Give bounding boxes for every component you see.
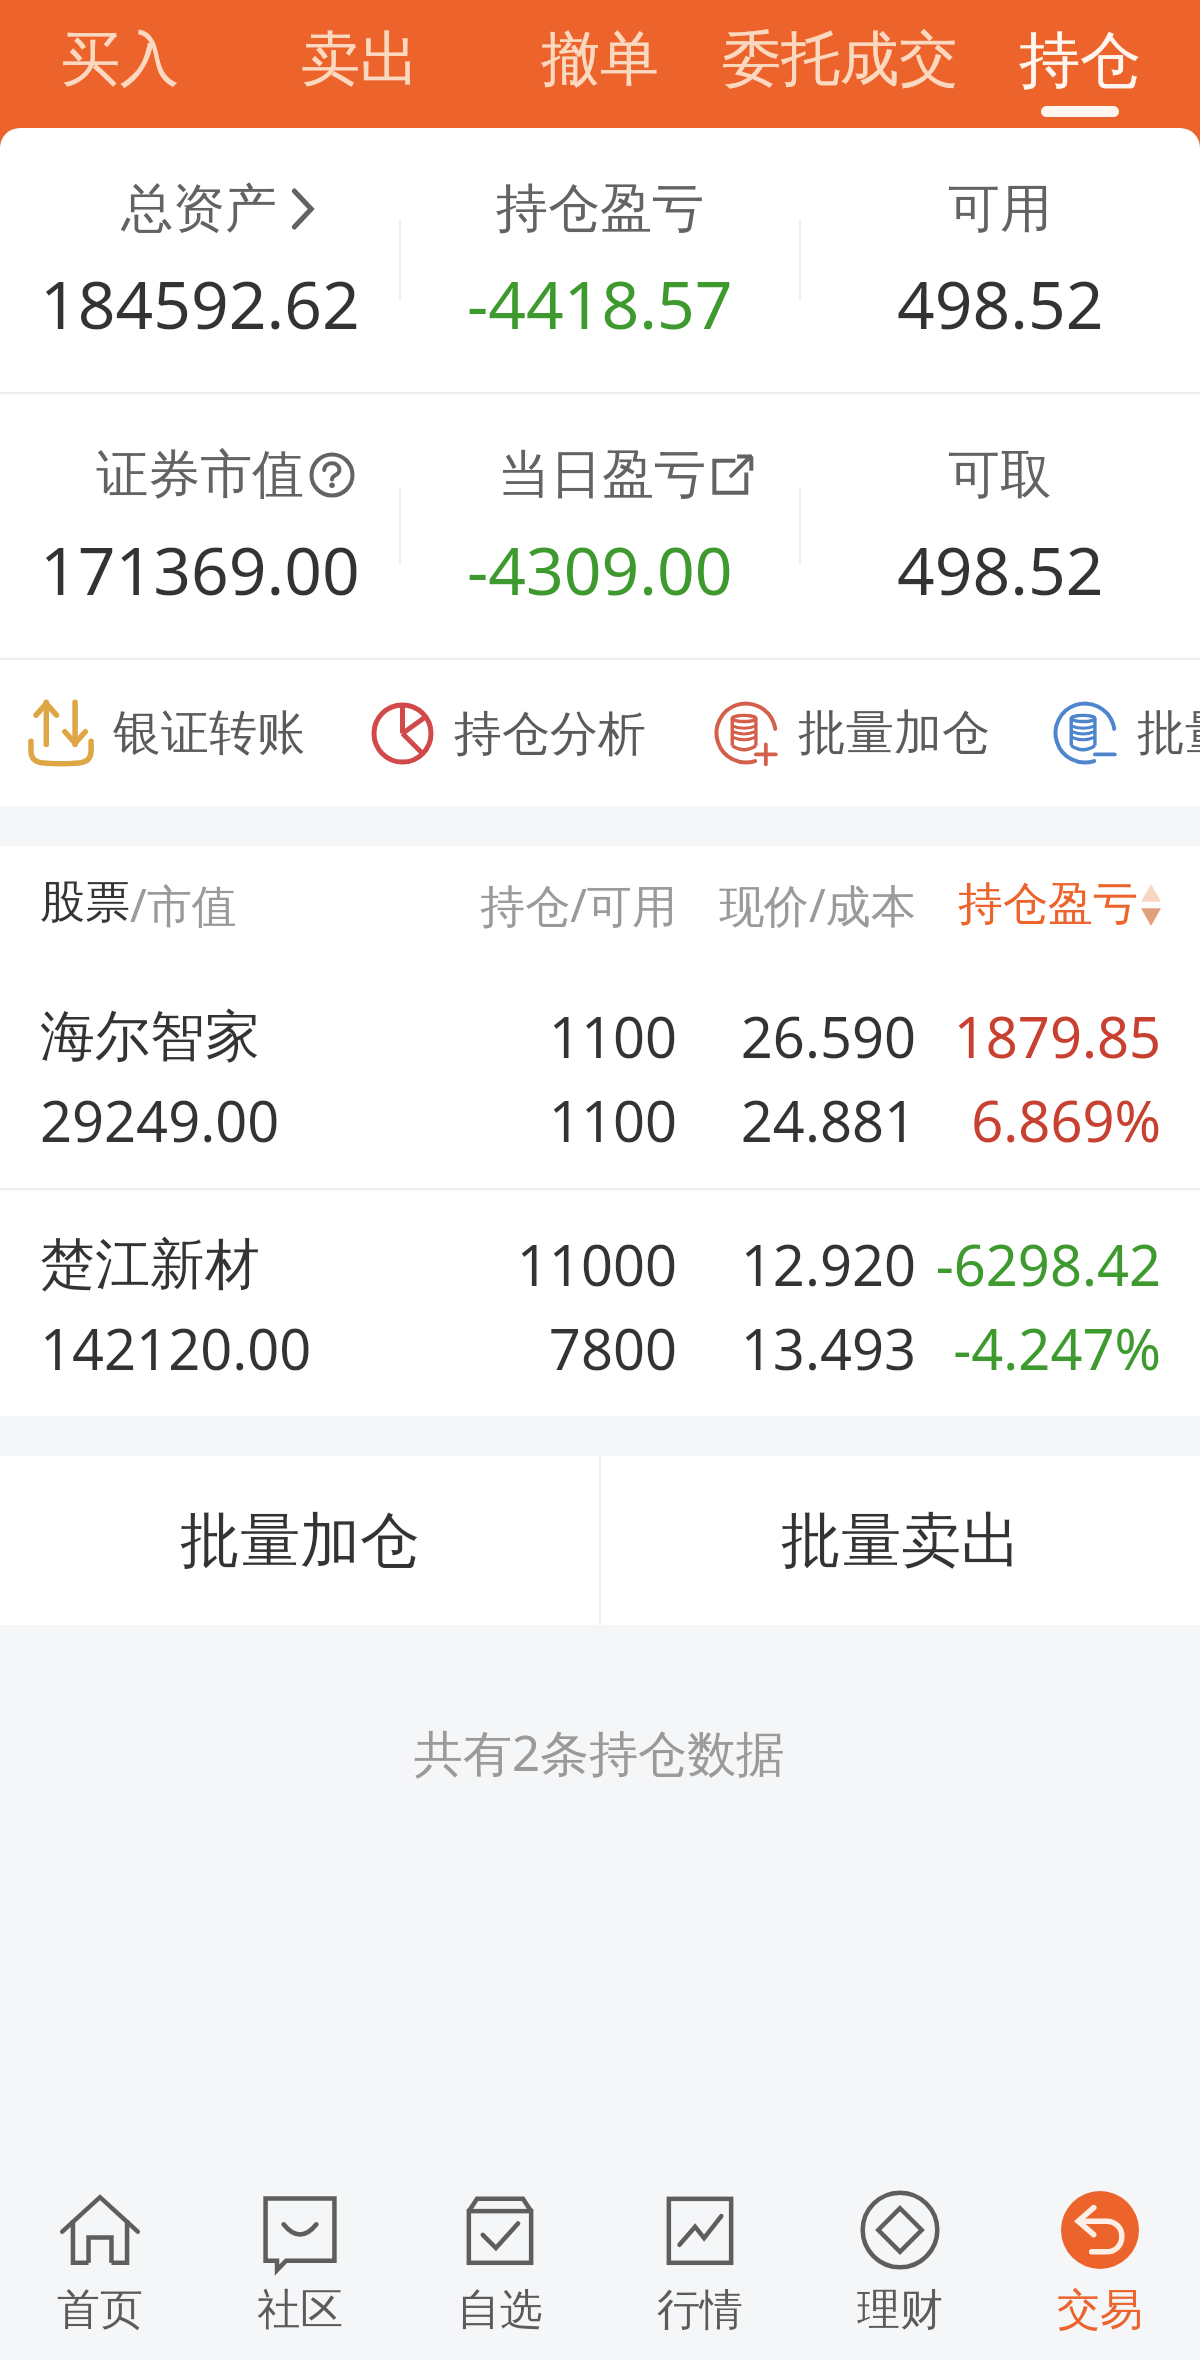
button[interactable]: 买入 xyxy=(0,0,240,128)
other: 首页 xyxy=(59,2189,141,2271)
staticText: 7800 xyxy=(477,1310,677,1386)
staticText: 当日盈亏 xyxy=(498,442,706,508)
staticText: 委托成交 xyxy=(722,22,958,96)
staticText: 184592.62 xyxy=(40,258,360,348)
button[interactable]: 批量加仓 xyxy=(0,1456,599,1625)
button[interactable]: 自选 xyxy=(400,2160,600,2360)
staticText: 1100 xyxy=(477,998,677,1074)
staticText: 社区 xyxy=(257,2283,343,2337)
button[interactable]: 海尔智家 xyxy=(0,962,1200,1188)
staticText: 持仓盈亏 xyxy=(958,876,1138,933)
button[interactable]: 楚江新材 xyxy=(0,1190,1200,1416)
staticText: 共有2条持仓数据 xyxy=(414,1719,786,1786)
staticText: 海尔智家 xyxy=(40,1002,477,1071)
staticText: 1879.85 xyxy=(916,998,1161,1074)
staticText: /市值 xyxy=(130,874,237,935)
staticText: 现价/成本 xyxy=(719,874,916,935)
button[interactable]: 持仓盈亏 xyxy=(400,128,800,392)
button[interactable]: 可用 xyxy=(800,128,1200,392)
staticText: 批量加仓 xyxy=(798,703,990,763)
staticText: 可取 xyxy=(948,442,1052,508)
button[interactable]: 批量卖出 xyxy=(1053,701,1200,765)
button[interactable]: 首页 xyxy=(0,2160,200,2360)
button[interactable]: 可取 xyxy=(800,394,1200,658)
staticText: 持仓盈亏 xyxy=(496,176,704,242)
staticText: 142120.00 xyxy=(40,1310,477,1386)
staticText: 持仓/可用 xyxy=(477,874,677,935)
staticText: -6298.42 xyxy=(916,1226,1161,1302)
button[interactable]: 社区 xyxy=(200,2160,400,2360)
staticText: 批量卖出 xyxy=(1137,703,1200,763)
button[interactable]: 撤单 xyxy=(480,0,720,128)
staticText: 批量加仓 xyxy=(180,1503,420,1579)
staticText: 自选 xyxy=(457,2283,543,2337)
other: 自选 xyxy=(459,2189,541,2271)
other: 行情 xyxy=(659,2189,741,2271)
staticText: 171369.00 xyxy=(40,524,360,614)
staticText: 13.493 xyxy=(677,1310,916,1386)
staticText: 撤单 xyxy=(541,22,659,96)
other: 交易 xyxy=(1061,2191,1139,2269)
staticText: 首页 xyxy=(57,2283,143,2337)
button[interactable]: 总资产 xyxy=(0,128,400,392)
button[interactable]: 卖出 xyxy=(240,0,480,128)
staticText: -4418.57 xyxy=(467,258,733,348)
button[interactable]: 批量加仓 xyxy=(714,701,990,765)
staticText: 24.881 xyxy=(677,1082,916,1158)
staticText: 29249.00 xyxy=(40,1082,477,1158)
staticText: 买入 xyxy=(61,22,179,96)
staticText: 交易 xyxy=(1057,2283,1143,2337)
button[interactable]: 理财 xyxy=(800,2160,1000,2360)
button[interactable]: 持仓 xyxy=(960,0,1200,128)
staticText: 26.590 xyxy=(677,998,916,1074)
button[interactable]: 证券市值 xyxy=(0,394,400,658)
staticText: 1100 xyxy=(477,1082,677,1158)
other: 理财 xyxy=(859,2189,941,2271)
staticText: 498.52 xyxy=(897,524,1104,614)
staticText: 6.869% xyxy=(916,1082,1161,1158)
staticText: 批量卖出 xyxy=(781,1503,1021,1579)
staticText: 行情 xyxy=(657,2283,743,2337)
staticText: 股票 xyxy=(40,874,130,931)
button[interactable]: 批量卖出 xyxy=(601,1456,1200,1625)
staticText: 理财 xyxy=(857,2283,943,2337)
staticText: 持仓 xyxy=(1019,22,1141,99)
button[interactable]: 持仓分析 xyxy=(371,702,646,765)
staticText: 楚江新材 xyxy=(40,1230,477,1299)
button[interactable]: 交易 xyxy=(1000,2160,1200,2360)
staticText: 总资产 xyxy=(121,176,277,242)
button[interactable]: 行情 xyxy=(600,2160,800,2360)
staticText: 可用 xyxy=(948,176,1052,242)
button[interactable]: 委托成交 xyxy=(720,0,960,128)
staticText: 持仓分析 xyxy=(454,704,646,764)
staticText: 498.52 xyxy=(897,258,1104,348)
staticText: 12.920 xyxy=(677,1226,916,1302)
staticText: -4.247% xyxy=(916,1310,1161,1386)
button[interactable]: 当日盈亏 xyxy=(400,394,800,658)
staticText: 11000 xyxy=(477,1226,677,1302)
staticText: -4309.00 xyxy=(467,524,733,614)
other: 社区 xyxy=(259,2189,341,2271)
staticText: 卖出 xyxy=(301,22,419,96)
staticText: 银证转账 xyxy=(113,703,305,763)
button[interactable]: 银证转账 xyxy=(29,701,305,765)
staticText: 证券市值 xyxy=(96,442,304,508)
